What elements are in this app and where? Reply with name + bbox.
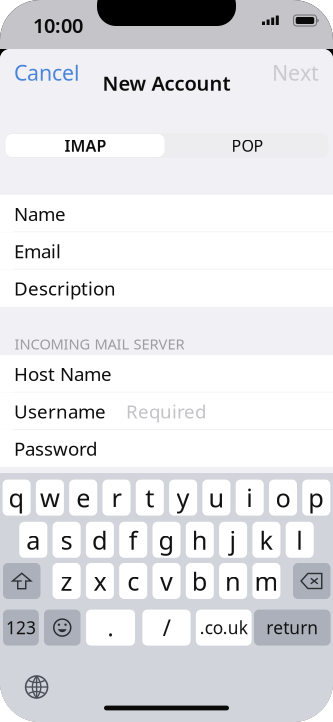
button[interactable]: l xyxy=(286,522,314,558)
button[interactable]: n xyxy=(219,563,247,599)
staticText: Email xyxy=(14,239,61,263)
staticText: c xyxy=(127,564,139,598)
staticText: 10:00 xyxy=(33,12,83,39)
staticText: o xyxy=(275,481,290,514)
button[interactable]: Shift xyxy=(3,563,40,599)
button[interactable]: c xyxy=(119,563,147,599)
button[interactable]: .co.uk xyxy=(196,610,252,646)
button[interactable]: Email xyxy=(0,232,333,270)
staticText: b xyxy=(192,564,208,598)
button[interactable]: t xyxy=(136,480,164,516)
button[interactable]: p xyxy=(302,480,330,516)
button[interactable]: Next keyboard xyxy=(20,670,54,704)
button[interactable]: / xyxy=(142,610,191,646)
button[interactable]: o xyxy=(269,480,297,516)
staticText: u xyxy=(208,481,224,514)
button[interactable]: v xyxy=(152,563,180,599)
button[interactable]: Cancel xyxy=(0,55,88,89)
button[interactable]: b xyxy=(186,563,214,599)
staticText: Username xyxy=(14,399,106,424)
staticText: Required xyxy=(126,399,206,424)
button[interactable]: g xyxy=(152,522,180,558)
staticText: h xyxy=(192,523,208,557)
button[interactable]: y xyxy=(169,480,197,516)
staticText: i xyxy=(246,481,253,514)
button[interactable]: Delete xyxy=(293,563,330,599)
staticText: a xyxy=(26,523,40,557)
button[interactable]: w xyxy=(36,480,64,516)
button[interactable]: IMAP xyxy=(4,133,166,158)
staticText: v xyxy=(160,564,173,598)
staticText: IMAP xyxy=(64,135,106,156)
staticText: New Account xyxy=(102,70,230,96)
button[interactable]: return xyxy=(254,610,331,646)
button[interactable]: Username xyxy=(0,392,333,430)
staticText: Password xyxy=(14,436,97,461)
staticText: . xyxy=(107,612,113,643)
button[interactable]: Description xyxy=(0,270,333,307)
staticText: Host Name xyxy=(14,361,112,386)
button[interactable]: m xyxy=(252,563,280,599)
staticText: m xyxy=(254,564,278,598)
staticText: INCOMING MAIL SERVER xyxy=(14,334,184,353)
staticText: POP xyxy=(231,135,263,156)
staticText: Description xyxy=(14,276,116,301)
staticText: e xyxy=(76,481,90,514)
button[interactable]: e xyxy=(69,480,97,516)
staticText: t xyxy=(145,481,154,514)
button[interactable]: j xyxy=(219,522,247,558)
staticText: y xyxy=(177,481,190,514)
button[interactable]: 123 xyxy=(3,610,39,646)
staticText: r xyxy=(111,481,121,514)
staticText: f xyxy=(129,523,138,557)
staticText: k xyxy=(259,523,273,557)
staticText: Name xyxy=(14,201,66,226)
button[interactable]: h xyxy=(186,522,214,558)
staticText: Next xyxy=(272,58,319,87)
button[interactable]: r xyxy=(102,480,130,516)
staticText: w xyxy=(40,481,60,514)
button[interactable]: k xyxy=(252,522,280,558)
staticText: s xyxy=(61,523,73,557)
button[interactable]: Next xyxy=(259,55,333,89)
button[interactable]: d xyxy=(86,522,114,558)
button[interactable]: POP xyxy=(166,133,328,158)
button[interactable]: q xyxy=(3,480,31,516)
button[interactable]: s xyxy=(53,522,81,558)
staticText: Cancel xyxy=(14,58,80,87)
button[interactable]: Password xyxy=(0,430,333,467)
button[interactable]: Emoji xyxy=(44,610,80,646)
button[interactable]: Name xyxy=(0,195,333,232)
button[interactable]: f xyxy=(119,522,147,558)
button[interactable]: Host Name xyxy=(0,355,333,392)
staticText: 123 xyxy=(6,616,36,639)
staticText: z xyxy=(61,564,73,598)
staticText: return xyxy=(266,616,318,639)
staticText: q xyxy=(9,481,25,514)
staticText: d xyxy=(92,523,108,557)
button[interactable]: x xyxy=(86,563,114,599)
button[interactable]: a xyxy=(19,522,47,558)
button[interactable]: u xyxy=(202,480,230,516)
staticText: x xyxy=(93,564,106,598)
button[interactable]: z xyxy=(53,563,81,599)
staticText: j xyxy=(230,523,237,557)
staticText: / xyxy=(162,612,170,643)
staticText: .co.uk xyxy=(200,616,248,639)
staticText: p xyxy=(308,481,324,514)
staticText: g xyxy=(158,523,174,557)
staticText: n xyxy=(225,564,241,598)
staticText: l xyxy=(296,523,303,557)
button[interactable]: . xyxy=(86,610,135,646)
button[interactable]: i xyxy=(236,480,264,516)
